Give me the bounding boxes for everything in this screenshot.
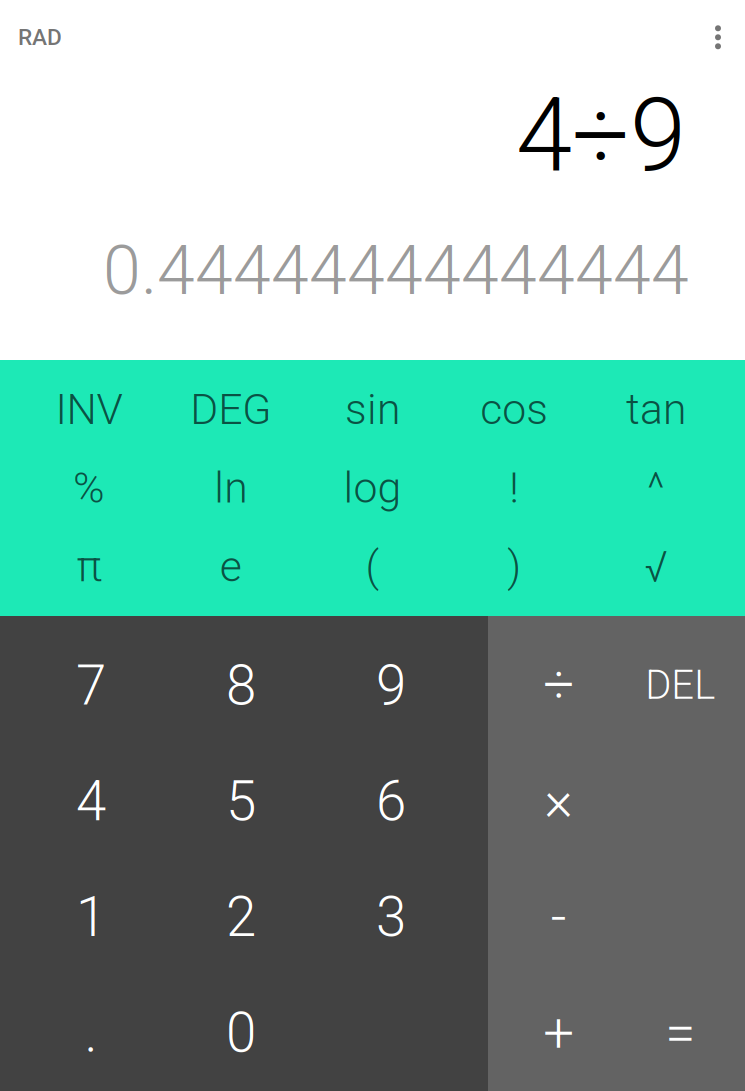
staticText: DEL [645,662,715,708]
button[interactable]: Power [585,449,727,527]
staticText: ! [509,463,519,513]
staticText: = [665,1001,695,1065]
button[interactable]: 4 [16,744,166,860]
button[interactable]: Euler's number [160,527,302,606]
staticText: 4 [76,770,106,834]
staticText: log [343,463,401,513]
staticText: 8 [226,654,256,718]
button[interactable]: DEG [160,370,302,449]
staticText: INV [55,384,122,434]
button[interactable]: Add [498,975,619,1091]
button[interactable]: 7 [16,628,166,744]
staticText: √ [645,542,668,592]
button[interactable]: 9 [316,628,466,744]
staticText: 0 [226,1001,256,1065]
button[interactable]: 2 [166,859,316,975]
staticText: ) [507,542,521,592]
button[interactable]: Multiply [498,743,619,859]
button[interactable]: cos [443,370,585,449]
staticText: tan [626,384,686,434]
staticText: 7 [76,654,106,718]
button[interactable]: 3 [316,859,466,975]
button[interactable]: Pi [18,527,160,606]
button[interactable]: Equals [619,975,741,1091]
staticText: DEG [190,384,271,434]
button[interactable]: 8 [166,628,316,744]
button[interactable]: 0 [166,975,316,1091]
staticText: 1 [76,885,106,949]
button[interactable]: log [302,449,443,527]
button[interactable]: Open parenthesis [302,527,443,606]
staticText: cos [480,384,548,434]
staticText: 5 [226,770,256,834]
staticText: ÷ [543,653,574,717]
staticText: sin [345,384,400,434]
button[interactable]: tan [585,370,727,449]
staticText: 0.44444444444444 [103,231,689,311]
button[interactable]: 1 [16,859,166,975]
button[interactable]: 5 [166,744,316,860]
button[interactable]: 6 [316,744,466,860]
staticText: RAD [18,24,62,51]
staticText: ( [365,542,379,592]
button[interactable]: Divide [498,627,619,743]
button[interactable]: ln [160,449,302,527]
button[interactable]: Close parenthesis [443,527,585,606]
button[interactable]: Factorial [443,449,585,527]
button[interactable]: Square root [585,527,727,606]
button[interactable]: Percent [18,449,160,527]
button[interactable]: RAD [12,16,68,59]
staticText: + [543,1001,574,1065]
staticText: ln [214,463,247,513]
button[interactable]: Decimal point [16,975,166,1091]
staticText: e [220,542,242,592]
staticText: 4÷9 [516,76,686,195]
staticText: × [544,769,573,833]
staticText: 2 [226,885,256,949]
button[interactable]: Subtract [498,859,619,975]
staticText: 6 [376,770,406,834]
button[interactable]: INV [18,370,160,449]
staticText: - [551,885,567,949]
staticText: ^ [647,463,665,513]
staticText: % [73,463,105,513]
staticText: π [76,542,101,592]
staticText: 3 [376,885,406,949]
button[interactable]: More options [701,16,735,58]
button[interactable]: sin [302,370,443,449]
staticText: . [84,1001,97,1065]
staticText: 9 [376,654,406,718]
button[interactable]: DEL [619,627,741,743]
